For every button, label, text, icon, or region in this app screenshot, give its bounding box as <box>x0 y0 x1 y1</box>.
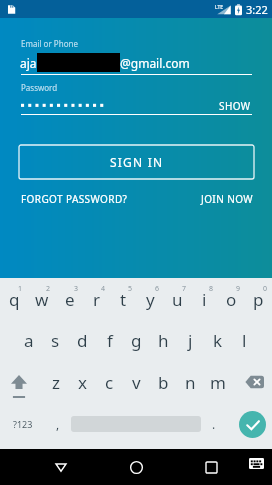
button[interactable]: z <box>42 362 69 402</box>
button[interactable]: v <box>123 362 150 402</box>
button[interactable]: b <box>150 362 177 402</box>
button[interactable]: SHOW <box>215 95 255 117</box>
staticText: . <box>212 416 216 432</box>
button[interactable]: 5 <box>110 279 137 319</box>
staticText: 3:22 <box>246 2 268 17</box>
staticText: e <box>65 288 75 311</box>
staticText: , <box>56 416 60 432</box>
button[interactable]: d <box>69 320 96 360</box>
staticText: 2 <box>46 284 51 294</box>
button[interactable]: JOIN NOW <box>197 188 257 210</box>
staticText: v <box>132 371 141 394</box>
button[interactable]: l <box>231 320 258 360</box>
button[interactable]: 7 <box>164 279 191 319</box>
button[interactable]: . <box>201 404 227 444</box>
button[interactable]: FORGOT PASSWORD? <box>17 188 132 210</box>
staticText: z <box>52 371 60 394</box>
button[interactable]: ?123 <box>0 404 45 444</box>
staticText: 3 <box>74 284 79 294</box>
staticText: r <box>93 288 101 311</box>
staticText: s <box>51 329 60 352</box>
button[interactable]: Enter <box>227 404 272 444</box>
staticText: c <box>105 371 114 394</box>
staticText: d <box>77 329 88 352</box>
staticText: ?123 <box>13 418 33 430</box>
staticText: a <box>24 329 34 352</box>
button[interactable]: Backspace <box>231 362 272 402</box>
button[interactable]: c <box>96 362 123 402</box>
button[interactable]: f <box>96 320 123 360</box>
staticText: Password <box>21 82 58 93</box>
button[interactable]: 8 <box>191 279 218 319</box>
staticText: h <box>158 329 169 352</box>
staticText: @gmail.com <box>120 55 190 71</box>
staticText: 8 <box>209 284 214 294</box>
button[interactable]: 6 <box>137 279 164 319</box>
staticText: j <box>188 329 193 352</box>
staticText: n <box>185 371 196 394</box>
button[interactable]: x <box>69 362 96 402</box>
staticText: SHOW <box>219 99 251 113</box>
staticText: 5 <box>128 284 133 294</box>
button[interactable]: Shift <box>0 362 42 402</box>
staticText: p <box>253 288 264 311</box>
button[interactable]: h <box>150 320 177 360</box>
staticText: LTE <box>215 4 224 11</box>
button[interactable]: 9 <box>218 279 245 319</box>
staticText: 0 <box>263 284 268 294</box>
staticText: t <box>120 288 127 311</box>
staticText: x <box>78 371 87 394</box>
staticText: 4 <box>101 284 106 294</box>
staticText: y <box>146 288 155 311</box>
staticText: q <box>9 288 20 311</box>
staticText: 9 <box>236 284 241 294</box>
staticText: FORGOT PASSWORD? <box>21 192 128 206</box>
button[interactable]: 4 <box>83 279 110 319</box>
staticText: 6 <box>155 284 160 294</box>
button[interactable]: Back <box>43 449 79 485</box>
staticText: b <box>158 371 169 394</box>
staticText: k <box>213 329 223 352</box>
staticText: m <box>210 371 226 394</box>
staticText: l <box>242 329 247 352</box>
button[interactable]: Space <box>71 404 201 444</box>
staticText: Email or Phone <box>21 38 78 49</box>
button[interactable]: j <box>177 320 204 360</box>
button[interactable]: k <box>204 320 231 360</box>
button[interactable]: 0 <box>245 279 272 319</box>
button[interactable]: 3 <box>56 279 83 319</box>
button[interactable]: g <box>123 320 150 360</box>
staticText: u <box>172 288 183 311</box>
staticText: SIGN IN <box>110 154 164 170</box>
staticText: 7 <box>182 284 187 294</box>
staticText: i <box>202 288 207 311</box>
button[interactable]: Home <box>118 449 154 485</box>
staticText: f <box>107 329 113 352</box>
staticText: o <box>226 288 237 311</box>
staticText: w <box>35 288 49 311</box>
button[interactable]: 2 <box>28 279 56 319</box>
button[interactable]: SIGN IN <box>19 145 254 179</box>
button[interactable]: Recent apps <box>193 449 229 485</box>
staticText: 1 <box>18 284 23 294</box>
button[interactable]: , <box>45 404 71 444</box>
button[interactable]: n <box>177 362 204 402</box>
button[interactable]: Switch keyboard <box>242 449 270 477</box>
button[interactable]: s <box>42 320 69 360</box>
staticText: JOIN NOW <box>201 192 253 206</box>
button[interactable]: m <box>204 362 231 402</box>
staticText: g <box>131 329 142 352</box>
button[interactable]: 1 <box>0 279 28 319</box>
button[interactable]: a <box>15 320 42 360</box>
staticText: aja <box>20 55 37 71</box>
